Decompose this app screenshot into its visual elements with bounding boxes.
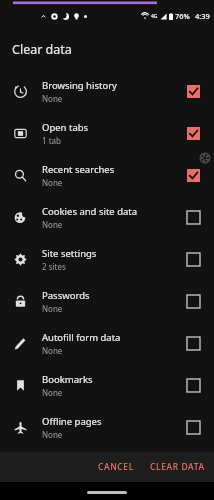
button[interactable]: Bookmarks xyxy=(180,372,206,398)
staticText: CLEAR DATA xyxy=(150,461,205,473)
staticText: Offline pages xyxy=(42,415,102,428)
staticText: Autofill form data xyxy=(42,331,121,344)
button[interactable]: Cookies and site data xyxy=(0,196,214,238)
staticText: None xyxy=(42,429,63,440)
button[interactable]: Recent searches xyxy=(0,154,214,196)
button[interactable]: Browsing history xyxy=(180,78,206,104)
staticText: Site settings xyxy=(42,247,97,260)
button[interactable]: Open tabs xyxy=(180,120,206,146)
button[interactable]: Site settings xyxy=(180,246,206,272)
staticText: 4G xyxy=(151,13,158,20)
staticText: None xyxy=(42,345,63,356)
staticText: Clear data xyxy=(12,41,72,58)
staticText: Open tabs xyxy=(42,121,89,134)
button[interactable]: Offline pages xyxy=(180,414,206,440)
staticText: None xyxy=(42,387,63,398)
staticText: Browsing history xyxy=(42,79,117,92)
staticText: 2 sites xyxy=(42,261,66,272)
button[interactable]: Passwords xyxy=(180,288,206,314)
staticText: Recent searches xyxy=(42,163,115,176)
button[interactable]: Autofill form data xyxy=(180,330,206,356)
staticText: Cookies and site data xyxy=(42,205,138,218)
button[interactable]: CANCEL xyxy=(91,455,141,479)
staticText: CANCEL xyxy=(98,461,134,473)
staticText: Passwords xyxy=(42,289,90,302)
button[interactable]: Passwords xyxy=(0,280,214,322)
staticText: None xyxy=(42,303,63,314)
button[interactable]: CLEAR DATA xyxy=(143,455,214,479)
staticText: 4:39 xyxy=(195,11,210,21)
button[interactable]: Browsing history xyxy=(0,70,214,112)
staticText: 76% xyxy=(175,11,190,21)
staticText: None xyxy=(42,177,63,188)
staticText: None xyxy=(42,93,63,104)
staticText: Bookmarks xyxy=(42,373,93,386)
button[interactable]: Site settings xyxy=(0,238,214,280)
button[interactable]: Offline pages xyxy=(0,406,214,448)
button[interactable]: Autofill form data xyxy=(0,322,214,364)
button[interactable]: Bookmarks xyxy=(0,364,214,406)
staticText: 1 tab xyxy=(42,135,61,146)
button[interactable]: Recent searches xyxy=(180,162,206,188)
button[interactable]: Cookies and site data xyxy=(180,204,206,230)
staticText: None xyxy=(42,219,63,230)
button[interactable]: Open tabs xyxy=(0,112,214,154)
